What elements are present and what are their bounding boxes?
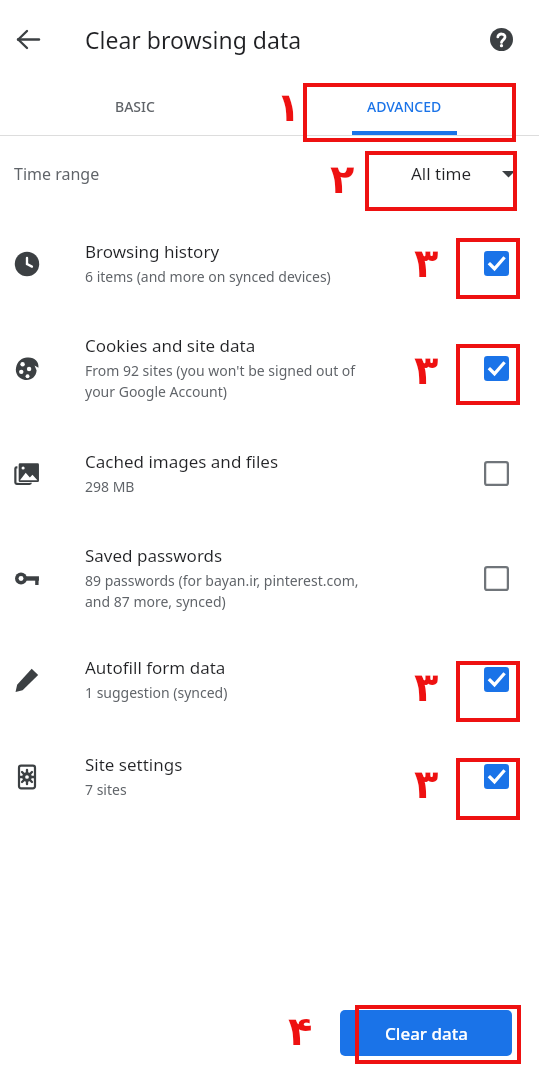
staticText: Clear browsing data (85, 24, 302, 55)
button[interactable]: Autofill form data (0, 631, 539, 728)
staticText: Site settings (85, 753, 183, 776)
button[interactable]: ADVANCED (269, 78, 539, 135)
button[interactable]: Help (479, 17, 523, 61)
button[interactable]: Back (4, 15, 52, 63)
staticText: 1 suggestion (synced) (85, 683, 228, 702)
staticText: 6 items (and more on synced devices) (85, 267, 331, 286)
staticText: BASIC (115, 97, 155, 116)
staticText: 7 sites (85, 780, 127, 799)
staticText: Clear data (385, 1022, 468, 1045)
staticText: Autofill form data (85, 656, 226, 679)
staticText: ۴ (288, 1008, 313, 1055)
button[interactable]: Cookies and site data (0, 316, 539, 421)
button[interactable]: Clear data (340, 1010, 512, 1056)
staticText: and 87 more, synced) (85, 592, 226, 611)
staticText: ۳ (414, 240, 439, 287)
staticText: Browsing history (85, 240, 220, 263)
button[interactable]: Browsing history (0, 211, 539, 316)
staticText: ۱ (276, 84, 301, 131)
staticText: Time range (14, 163, 100, 185)
staticText: Cookies and site data (85, 334, 256, 357)
button[interactable]: Site settings (0, 728, 539, 825)
staticText: 298 MB (85, 477, 135, 496)
staticText: ۳ (414, 664, 439, 711)
staticText: your Google Account) (85, 382, 227, 401)
button[interactable]: BASIC (0, 78, 269, 135)
staticText: ۲ (330, 156, 355, 203)
button[interactable]: Saved passwords (0, 526, 539, 631)
staticText: ۳ (414, 761, 439, 808)
staticText: 89 passwords (for bayan.ir, pinterest.co… (85, 571, 359, 590)
staticText: Saved passwords (85, 544, 223, 567)
staticText: From 92 sites (you won't be signed out o… (85, 361, 356, 380)
staticText: Cached images and files (85, 450, 279, 473)
staticText: ADVANCED (367, 97, 442, 116)
button[interactable]: All time (411, 162, 515, 185)
staticText: ۳ (414, 347, 439, 394)
button[interactable]: Cached images and files (0, 421, 539, 526)
staticText: All time (411, 162, 472, 185)
